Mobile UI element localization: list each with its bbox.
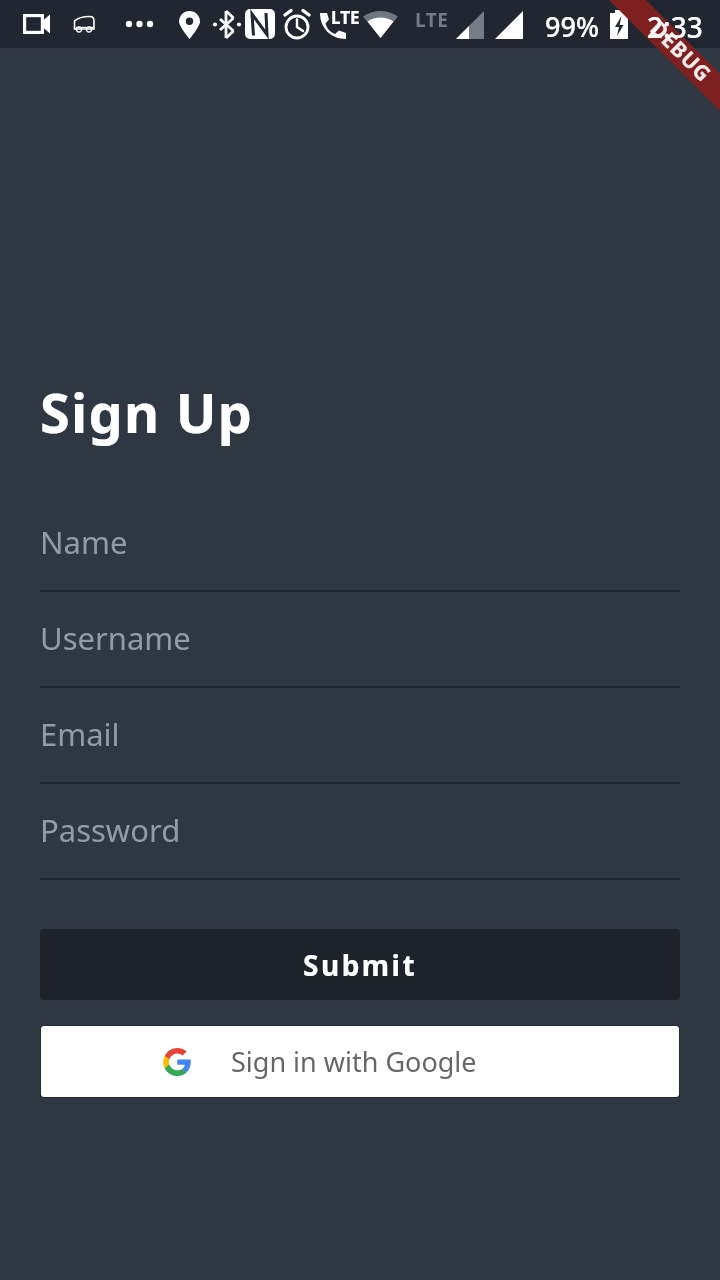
staticText: Password — [40, 809, 181, 851]
staticText: DEBUG — [644, 14, 718, 89]
staticText: 99% — [545, 8, 599, 45]
staticText: Submit — [303, 946, 418, 984]
staticText: LTE — [415, 7, 449, 33]
button[interactable]: Email — [40, 688, 680, 784]
button[interactable]: Sign in with Google — [41, 1026, 679, 1097]
staticText: Sign Up — [40, 375, 254, 449]
staticText: Sign in with Google — [231, 1043, 477, 1080]
staticText: Name — [40, 521, 128, 563]
staticText: 2:33 — [647, 8, 703, 46]
staticText: Username — [40, 617, 191, 659]
button[interactable]: Password — [40, 784, 680, 880]
button[interactable]: Submit — [40, 929, 680, 1000]
staticText: LTE — [331, 6, 360, 29]
button[interactable]: Username — [40, 592, 680, 688]
button[interactable]: Name — [40, 496, 680, 592]
staticText: Email — [40, 713, 120, 755]
